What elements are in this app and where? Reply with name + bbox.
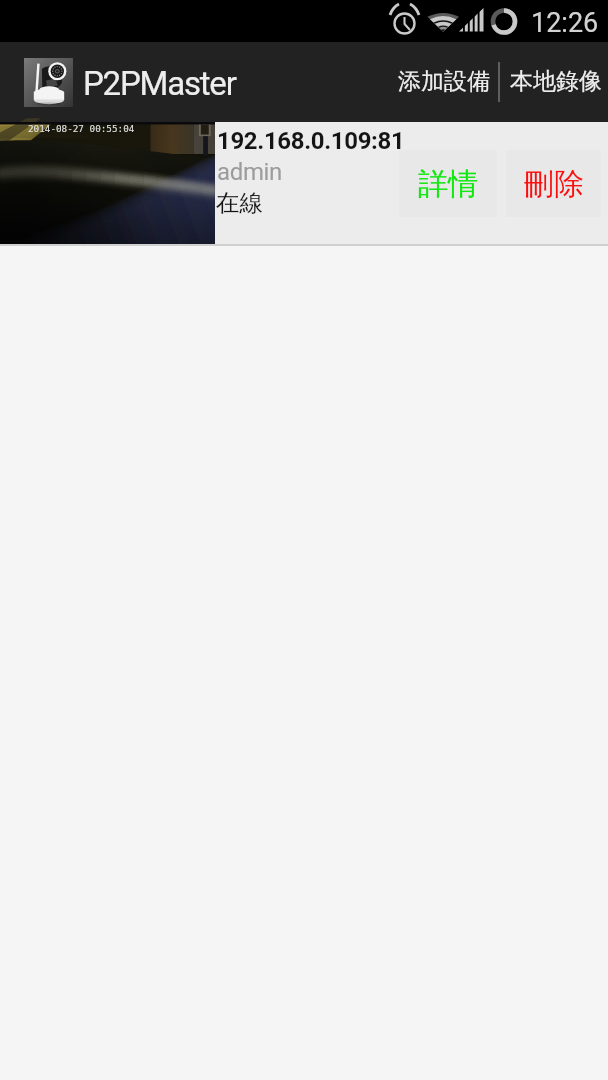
staticText: 192.168.0.109:81 <box>217 127 405 155</box>
button[interactable]: 本地錄像 <box>503 42 608 121</box>
staticText: 刪除 <box>524 165 584 203</box>
button[interactable]: 刪除 <box>506 150 601 217</box>
staticText: 12:26 <box>531 7 599 39</box>
staticText: 在線 <box>216 188 263 218</box>
staticText: 本地錄像 <box>510 67 602 96</box>
button[interactable]: 添加設備 <box>390 42 498 121</box>
staticText: 2014-08-27 00:55:04 <box>28 123 135 134</box>
button[interactable]: 詳情 <box>399 150 497 217</box>
staticText: 添加設備 <box>398 67 490 96</box>
staticText: admin <box>217 158 282 186</box>
staticText: P2PMaster <box>83 64 236 103</box>
staticText: 詳情 <box>418 165 478 203</box>
button[interactable]: 2014-08-27 00:55:04 <box>0 122 608 246</box>
